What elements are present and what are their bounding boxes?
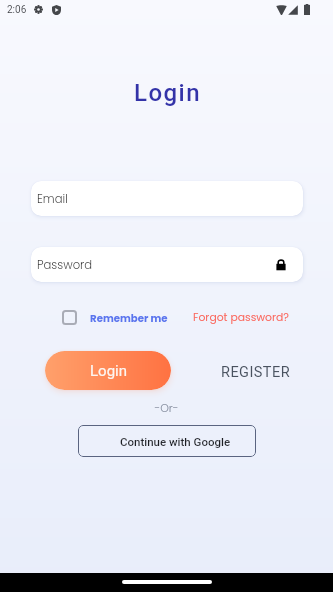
button[interactable]: Continue with Google (78, 425, 256, 457)
staticText: REGISTER (221, 364, 291, 381)
staticText: Login (90, 362, 127, 380)
button[interactable]: Remember me (62, 310, 172, 325)
button[interactable]: Forgot password? (193, 310, 290, 325)
button[interactable]: REGISTER (209, 359, 303, 386)
staticText: 2:06 (7, 4, 27, 16)
staticText: -Or- (0, 400, 333, 415)
button[interactable]: Email (31, 181, 303, 216)
staticText: Forgot password? (193, 310, 290, 325)
button[interactable]: Login (45, 351, 171, 390)
staticText: Password (37, 257, 93, 273)
staticText: Remember me (90, 311, 168, 325)
other: Toggle password visibility (276, 259, 286, 271)
button[interactable]: Password (31, 247, 303, 282)
staticText: Login (1, 79, 333, 107)
staticText: Continue with Google (120, 435, 231, 448)
staticText: Email (37, 191, 68, 207)
